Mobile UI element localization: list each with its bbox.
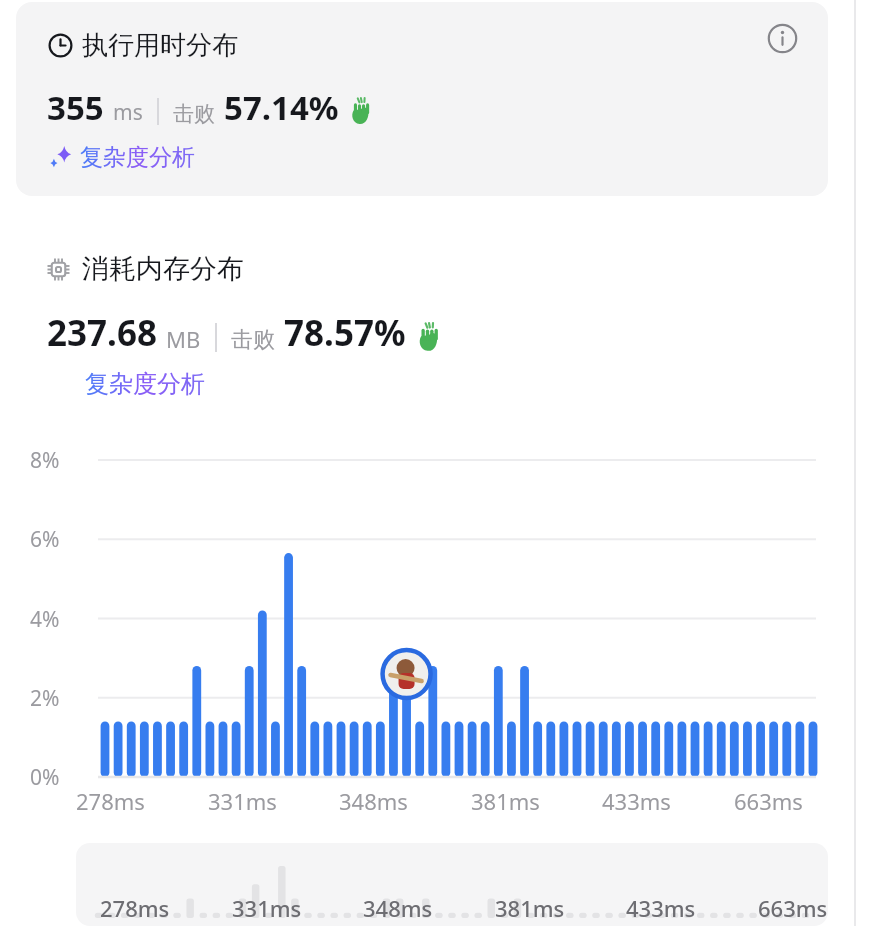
button[interactable] xyxy=(16,2,828,196)
button[interactable]: 复杂度分析 xyxy=(50,143,195,172)
staticText: 433ms xyxy=(602,786,671,816)
staticText: ms xyxy=(113,98,143,127)
button[interactable]: 复杂度分析 xyxy=(85,369,205,399)
staticText: 331ms xyxy=(208,786,277,816)
staticText: 348ms xyxy=(363,893,433,923)
staticText: MB xyxy=(166,324,201,354)
staticText: 0% xyxy=(30,763,60,792)
button[interactable]: 278ms xyxy=(76,843,828,926)
staticText: 6% xyxy=(30,525,60,554)
staticText: 击败 xyxy=(231,326,275,354)
staticText: 433ms xyxy=(626,893,696,923)
staticText: 355 xyxy=(47,85,104,130)
staticText: 348ms xyxy=(339,786,408,816)
staticText: 57.14% xyxy=(224,85,339,130)
staticText: 2% xyxy=(30,684,60,713)
staticText: 击败 xyxy=(173,101,215,127)
staticText: 381ms xyxy=(471,786,540,816)
staticText: 237.68 xyxy=(47,309,157,357)
staticText: 663ms xyxy=(758,893,828,923)
staticText: 复杂度分析 xyxy=(85,369,205,399)
staticText: 4% xyxy=(30,605,60,634)
staticText: 执行用时分布 xyxy=(82,29,238,62)
staticText: 381ms xyxy=(495,893,565,923)
button[interactable]: 说明 xyxy=(763,19,801,57)
staticText: 278ms xyxy=(76,786,145,816)
button[interactable]: 消耗内存分布 xyxy=(46,252,244,286)
staticText: 消耗内存分布 xyxy=(82,252,244,286)
button[interactable]: 执行用时分布 xyxy=(48,29,238,62)
staticText: 663ms xyxy=(734,786,803,816)
staticText: 复杂度分析 xyxy=(80,143,195,172)
staticText: 278ms xyxy=(100,893,170,923)
staticText: 78.57% xyxy=(284,309,406,357)
staticText: 8% xyxy=(30,446,60,475)
staticText: 331ms xyxy=(232,893,302,923)
